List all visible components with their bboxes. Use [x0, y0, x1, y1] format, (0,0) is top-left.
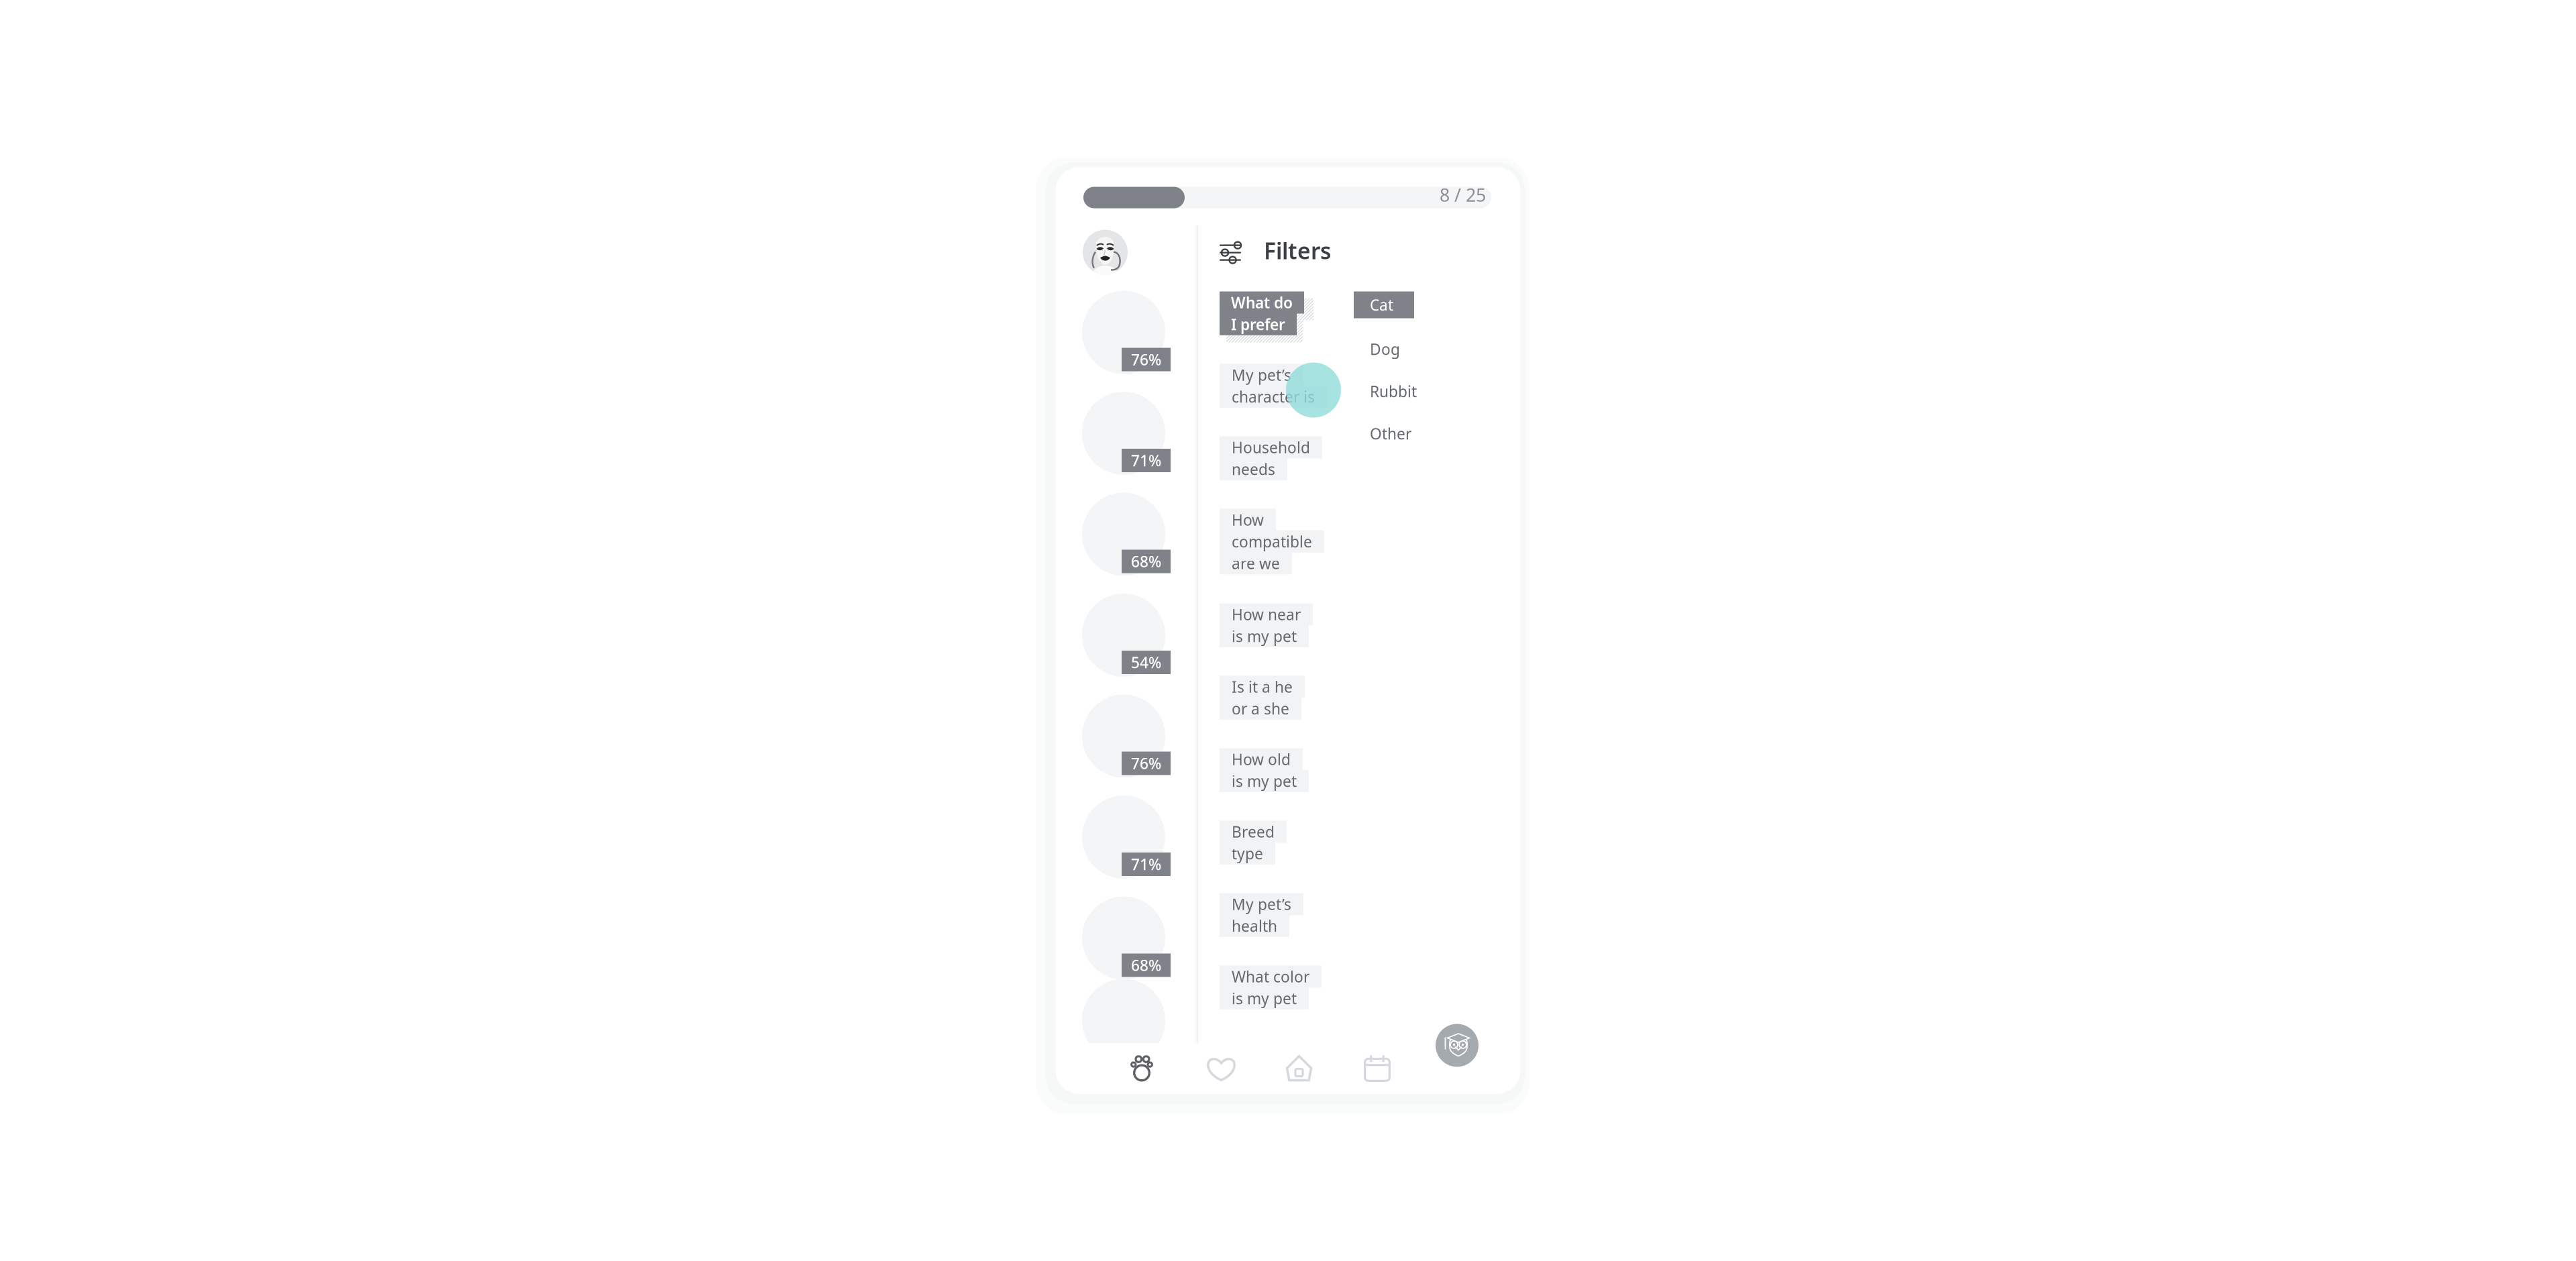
- button[interactable]: Is it a he: [1220, 676, 1305, 720]
- staticText: How: [1232, 510, 1264, 530]
- staticText: How old: [1232, 749, 1291, 769]
- staticText: is my pet: [1232, 988, 1297, 1008]
- staticText: Household: [1232, 437, 1310, 457]
- staticText: is my pet: [1232, 771, 1297, 791]
- button[interactable]: Cat: [1354, 291, 1414, 318]
- button[interactable]: How: [1220, 509, 1324, 574]
- staticText: 76%: [1131, 349, 1161, 370]
- button[interactable]: Favourites: [1207, 1057, 1235, 1081]
- button[interactable]: What color: [1220, 966, 1322, 1009]
- button[interactable]: Rubbit: [1370, 381, 1417, 402]
- staticText: 71%: [1131, 450, 1161, 471]
- button[interactable]: Breed: [1220, 821, 1287, 865]
- staticText: Other: [1370, 424, 1411, 444]
- button[interactable]: My pet’s: [1220, 893, 1303, 937]
- staticText: are we: [1232, 553, 1280, 573]
- staticText: character is: [1232, 387, 1315, 407]
- button[interactable]: What do: [1220, 291, 1304, 335]
- button[interactable]: Profile: [1083, 230, 1128, 275]
- staticText: My pet’s: [1232, 365, 1291, 385]
- staticText: How near: [1232, 604, 1301, 624]
- staticText: Filters: [1264, 236, 1331, 265]
- staticText: health: [1232, 916, 1277, 936]
- button[interactable]: Home: [1285, 1055, 1313, 1082]
- button[interactable]: Dog: [1370, 338, 1400, 360]
- staticText: needs: [1232, 459, 1275, 479]
- button[interactable]: Calendar: [1364, 1055, 1391, 1082]
- staticText: Rubbit: [1370, 381, 1417, 401]
- staticText: Cat: [1370, 295, 1393, 315]
- staticText: 8 / 25: [1440, 183, 1486, 207]
- staticText: or a she: [1232, 698, 1289, 719]
- staticText: What do: [1231, 292, 1293, 313]
- staticText: Is it a he: [1232, 677, 1293, 697]
- button[interactable]: Household: [1220, 436, 1322, 480]
- staticText: 68%: [1131, 955, 1161, 975]
- staticText: What color: [1232, 966, 1309, 987]
- staticText: is my pet: [1232, 626, 1297, 646]
- staticText: Dog: [1370, 339, 1400, 359]
- button[interactable]: Learn: [1436, 1024, 1479, 1067]
- staticText: compatible: [1232, 531, 1312, 552]
- button[interactable]: My pet’s: [1220, 364, 1327, 408]
- staticText: Breed: [1232, 822, 1275, 842]
- staticText: 54%: [1131, 652, 1161, 672]
- staticText: 76%: [1131, 753, 1161, 773]
- button[interactable]: Other: [1370, 423, 1411, 444]
- staticText: I prefer: [1231, 314, 1285, 334]
- staticText: 71%: [1131, 854, 1161, 874]
- staticText: 68%: [1131, 551, 1161, 571]
- button[interactable]: How old: [1220, 748, 1309, 792]
- staticText: My pet’s: [1232, 894, 1291, 914]
- button[interactable]: Pets: [1132, 1055, 1152, 1082]
- button[interactable]: How near: [1220, 603, 1313, 647]
- staticText: type: [1232, 843, 1263, 864]
